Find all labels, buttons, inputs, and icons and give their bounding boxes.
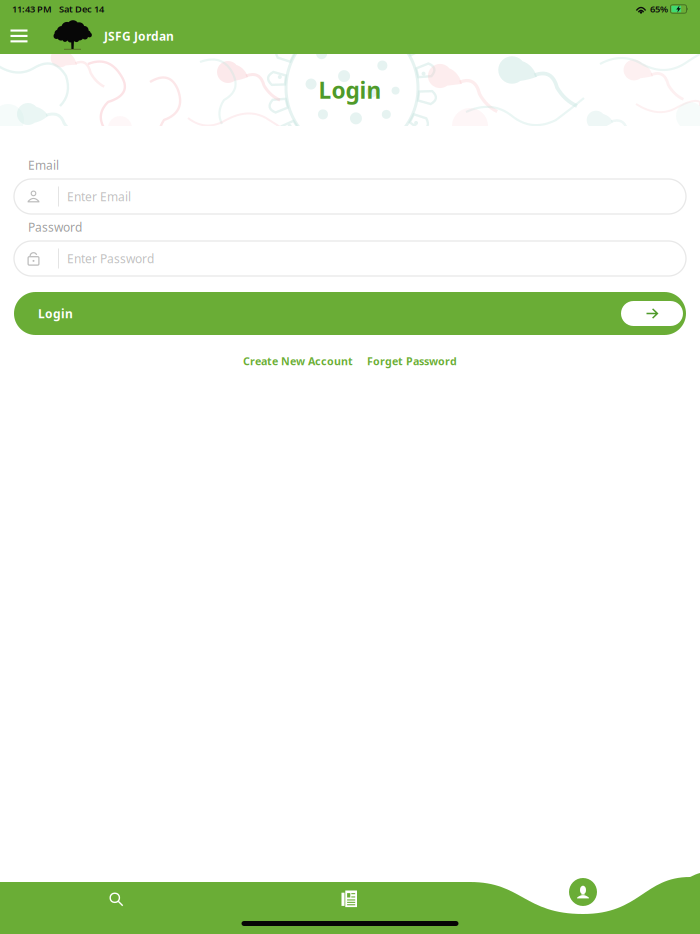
staticText: Login xyxy=(318,75,381,105)
staticText: Enter Email xyxy=(67,188,131,204)
staticText: JSFG Jordan xyxy=(104,28,174,44)
staticText: 65% xyxy=(650,3,668,15)
button[interactable]: Profile xyxy=(569,878,597,906)
button[interactable]: Forget Password xyxy=(353,354,457,368)
staticText: Create New Account xyxy=(243,354,353,368)
staticText: Email xyxy=(28,157,59,173)
button[interactable]: Create New Account xyxy=(243,354,353,368)
staticText: Login xyxy=(38,305,73,321)
staticText: Sat Dec 14 xyxy=(59,3,104,15)
button[interactable]: Search xyxy=(80,885,152,913)
staticText: Password xyxy=(28,219,82,235)
button[interactable]: News xyxy=(313,885,385,913)
staticText: 11:43 PM xyxy=(12,3,52,15)
button[interactable]: Menu xyxy=(1,18,37,54)
staticText: Forget Password xyxy=(367,354,457,368)
staticText: Enter Password xyxy=(67,250,154,266)
button[interactable]: Login xyxy=(14,292,686,335)
